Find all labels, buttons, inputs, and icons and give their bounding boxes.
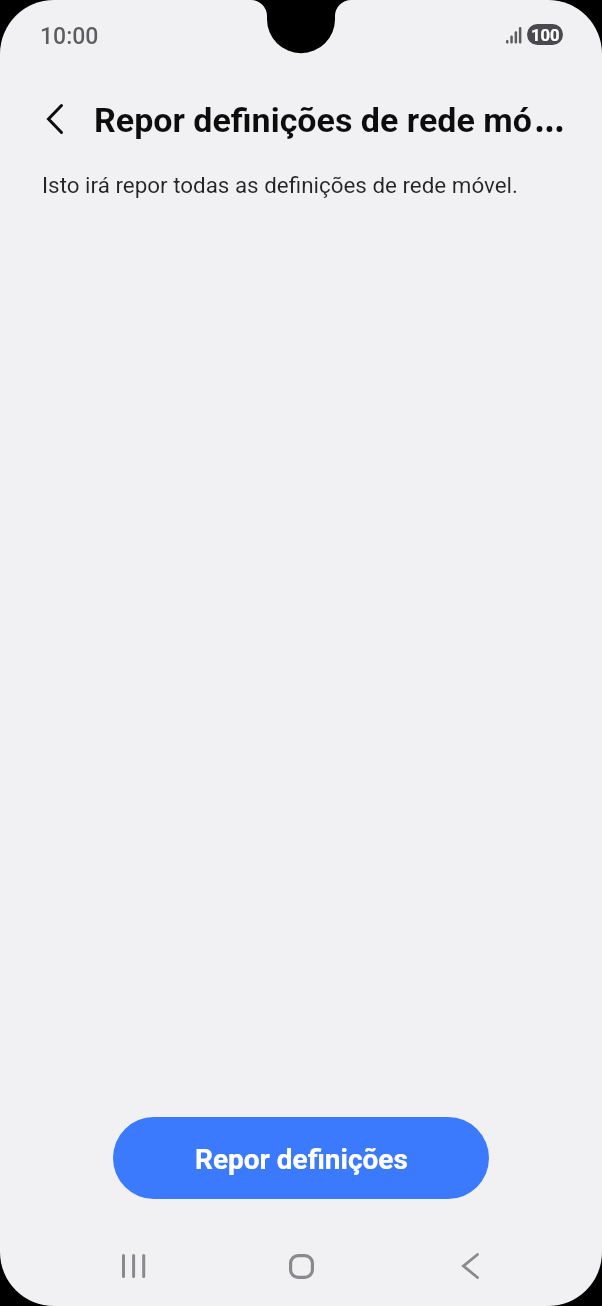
button[interactable]: Back — [430, 1227, 510, 1305]
button[interactable]: Back — [33, 95, 77, 143]
button[interactable]: Repor definições — [113, 1117, 489, 1199]
button[interactable]: Recent apps — [93, 1227, 173, 1305]
staticText: Repor definições de rede mó — [94, 100, 532, 140]
staticText: 100 — [531, 26, 560, 45]
staticText: Isto irá repor todas as definições de re… — [42, 172, 518, 198]
staticText: 10:00 — [40, 23, 99, 50]
staticText: Repor definições — [195, 1143, 408, 1176]
button[interactable]: Home — [261, 1227, 341, 1305]
